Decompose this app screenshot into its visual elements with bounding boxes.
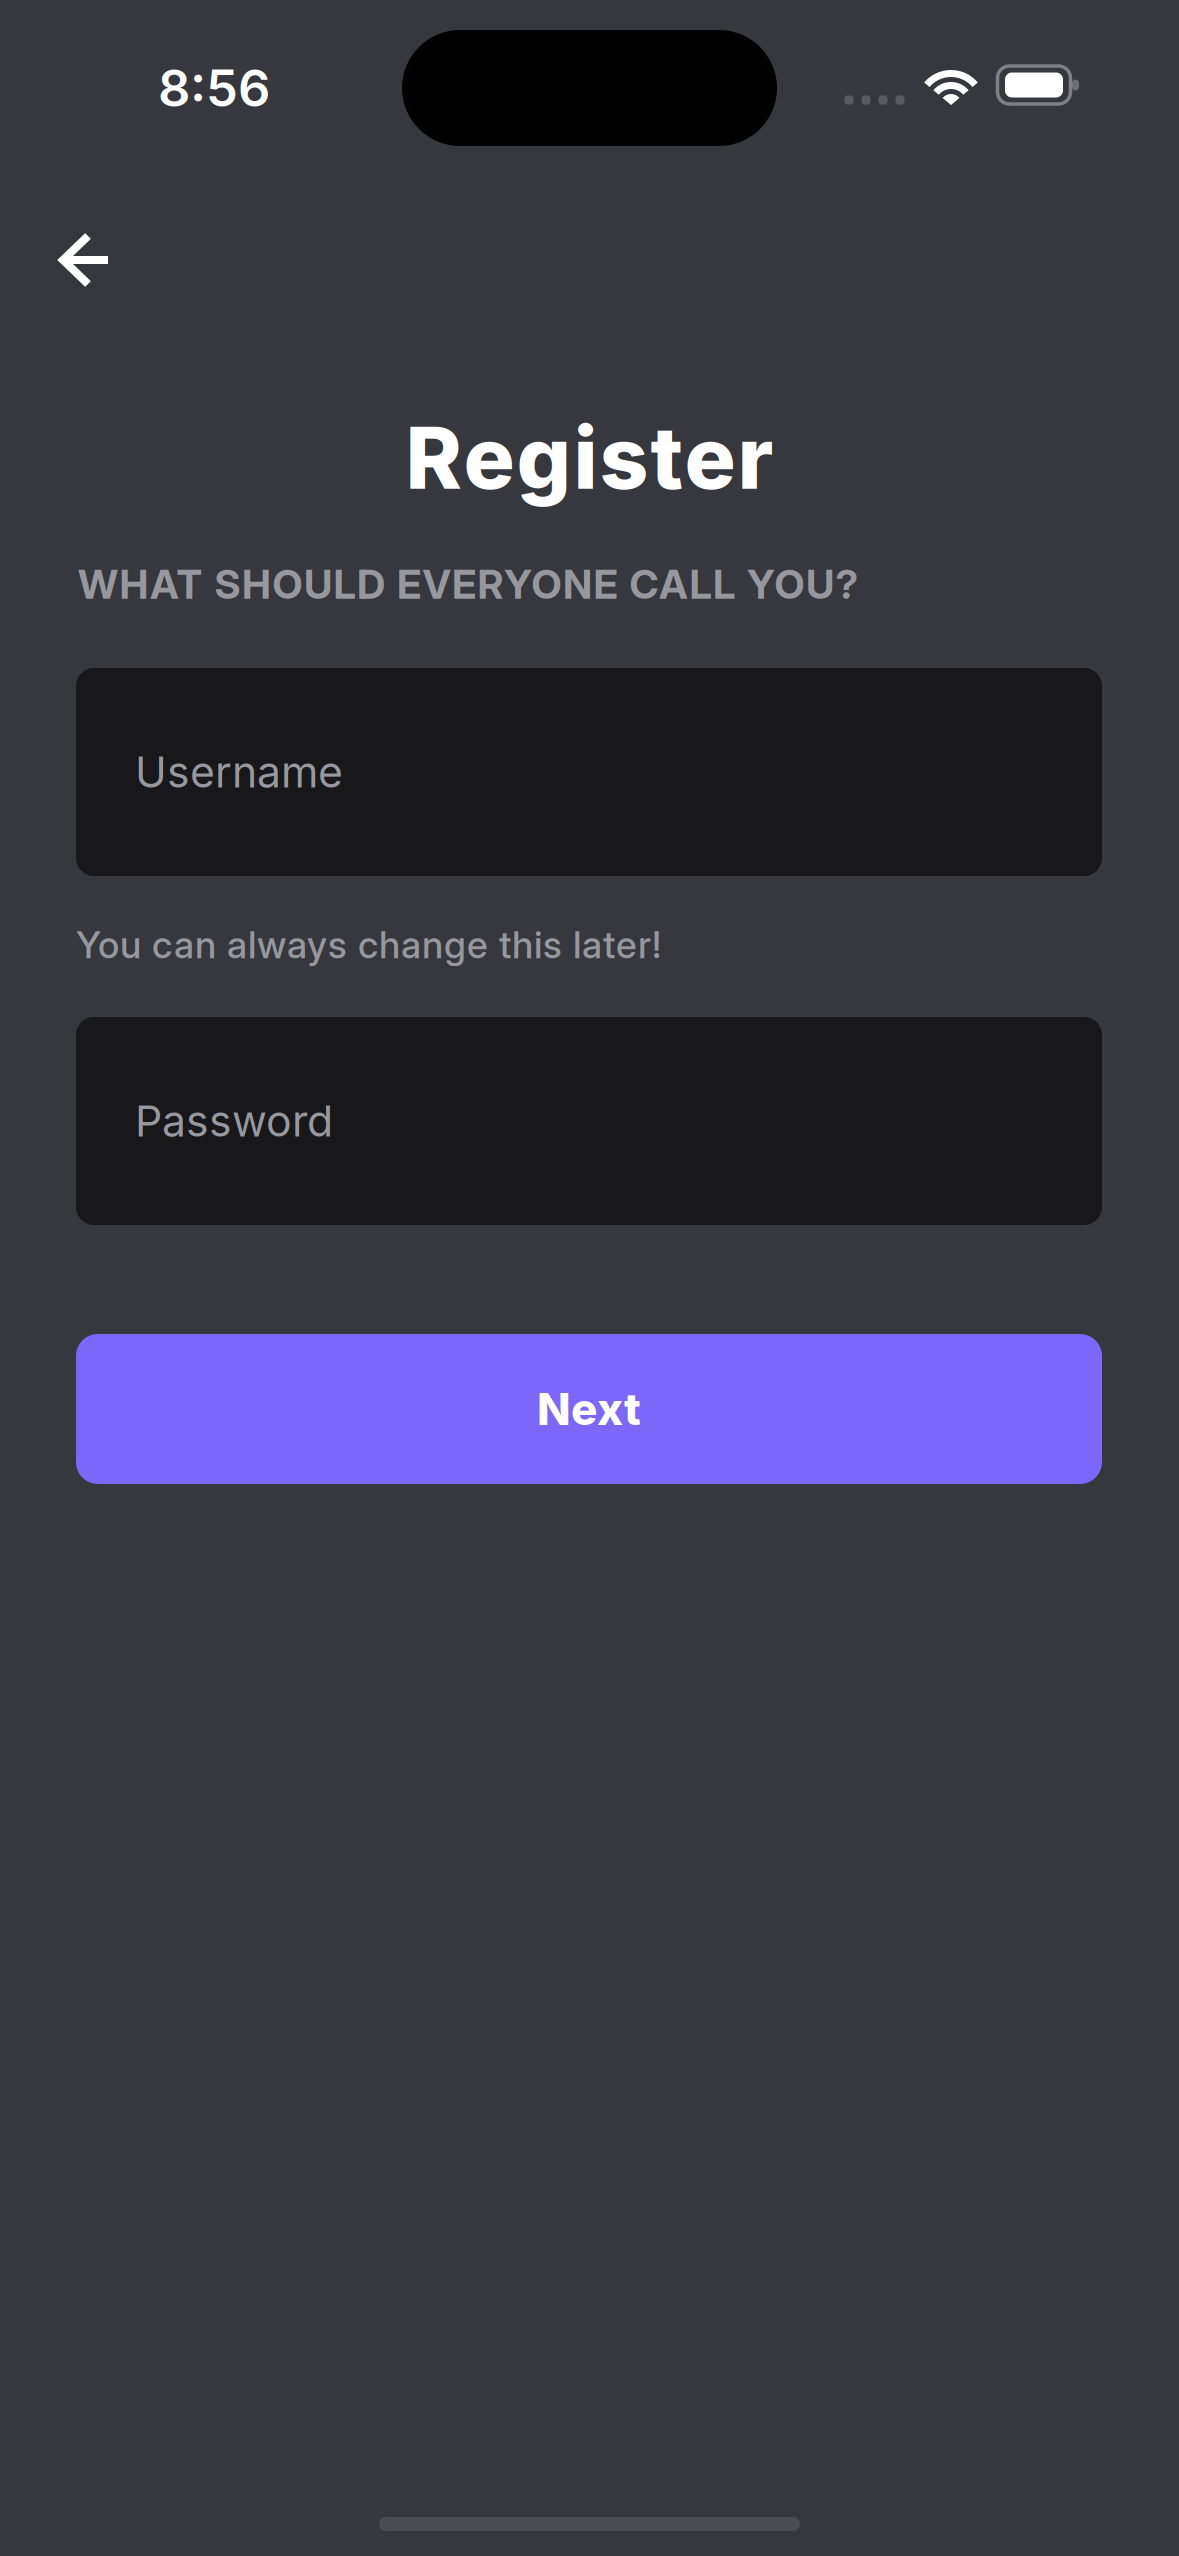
staticText: Password <box>135 1095 333 1147</box>
button[interactable]: Next <box>76 1334 1102 1484</box>
staticText: Register <box>405 406 773 509</box>
staticText: You can always change this later! <box>76 922 661 967</box>
staticText: Next <box>537 1382 641 1436</box>
button[interactable]: Username <box>76 668 1102 876</box>
staticText: WHAT SHOULD EVERYONE CALL YOU? <box>78 560 858 608</box>
staticText: 8:56 <box>158 57 270 119</box>
button[interactable]: Password <box>76 1017 1102 1225</box>
staticText: Username <box>135 746 343 798</box>
button[interactable]: Back <box>35 205 145 315</box>
